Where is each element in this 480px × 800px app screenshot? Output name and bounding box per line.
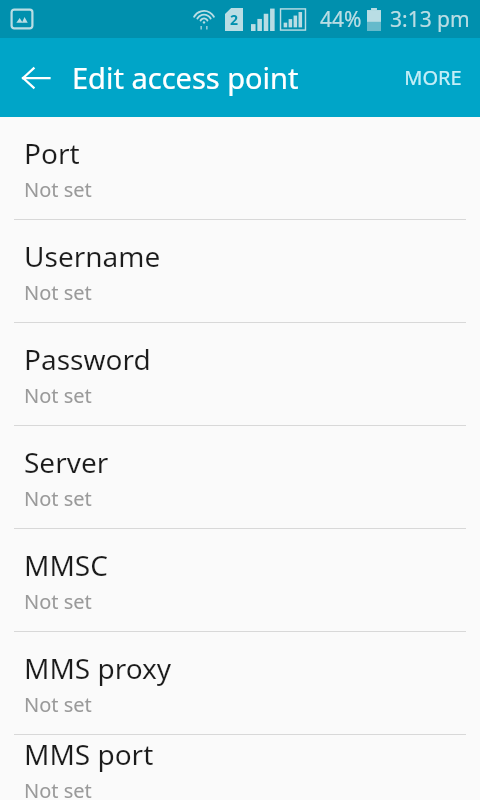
button[interactable]: Navigate up — [8, 50, 64, 106]
staticText: Server — [24, 443, 109, 481]
staticText: MORE — [404, 64, 462, 91]
staticText: Not set — [24, 588, 92, 615]
staticText: MMSC — [24, 546, 108, 584]
button[interactable]: MMS port — [0, 735, 480, 800]
button[interactable]: MMS proxy — [0, 632, 480, 734]
staticText: Not set — [24, 777, 92, 800]
staticText: Port — [24, 134, 80, 172]
staticText: 2 — [230, 10, 239, 29]
button[interactable]: Server — [0, 426, 480, 528]
button[interactable]: MMSC — [0, 529, 480, 631]
staticText: Not set — [24, 485, 92, 512]
staticText: Not set — [24, 279, 92, 306]
staticText: MMS proxy — [24, 649, 172, 687]
staticText: MMS port — [24, 735, 154, 773]
button[interactable]: MORE — [386, 38, 480, 117]
staticText: Not set — [24, 176, 92, 203]
staticText: Not set — [24, 382, 92, 409]
button[interactable]: Port — [0, 117, 480, 219]
staticText: Username — [24, 237, 161, 275]
button[interactable]: Password — [0, 323, 480, 425]
button[interactable]: Username — [0, 220, 480, 322]
staticText: Edit access point — [72, 58, 299, 97]
staticText: 44% — [320, 5, 362, 34]
staticText: 3:13 pm — [390, 5, 470, 34]
staticText: Not set — [24, 691, 92, 718]
staticText: Password — [24, 340, 151, 378]
